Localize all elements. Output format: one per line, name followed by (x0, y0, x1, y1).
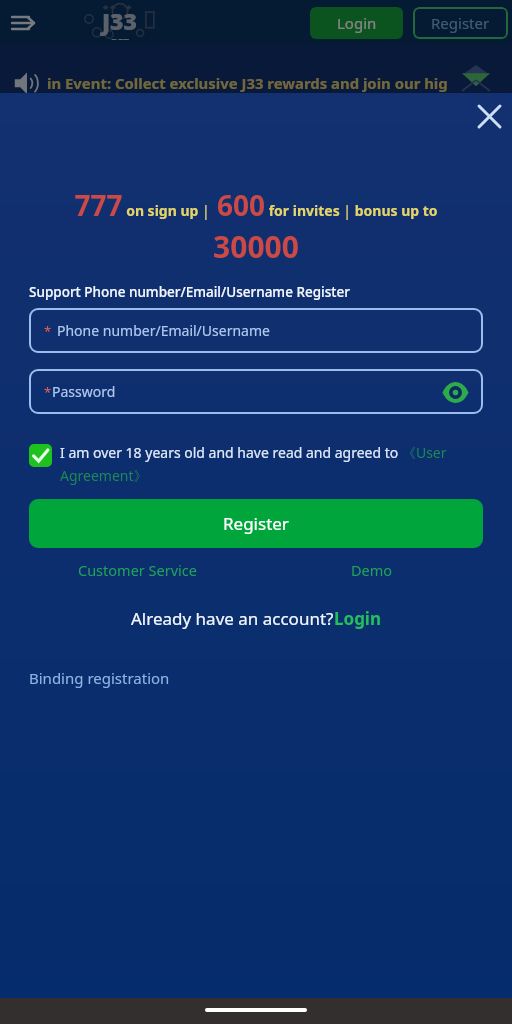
staticText: 777 on sign up | 600 for invites | bonus… (20, 186, 492, 224)
button[interactable]: * (29, 308, 483, 353)
staticText: in Event: Collect exclusive J33 rewards … (47, 73, 448, 93)
button[interactable]: Login (334, 607, 382, 630)
button[interactable]: Show password (440, 377, 470, 407)
staticText: Login (337, 13, 377, 33)
staticText: Support Phone number/Email/Username Regi… (29, 283, 350, 301)
staticText: Register (223, 512, 289, 535)
staticText: 30000 (0, 226, 512, 267)
staticText: Demo (351, 560, 393, 580)
button[interactable]: Close (470, 97, 509, 136)
button[interactable]: Demo (347, 556, 397, 584)
staticText: * (44, 322, 52, 340)
button[interactable]: * (29, 369, 483, 414)
staticText: Already have an account? (131, 607, 334, 630)
staticText: Customer Service (78, 560, 197, 580)
staticText: Register (431, 13, 490, 33)
staticText: * (44, 383, 52, 401)
button[interactable]: Menu (6, 6, 40, 40)
staticText: I am over 18 years old and have read and… (60, 443, 483, 485)
button[interactable]: Register (413, 7, 508, 39)
button[interactable]: Agree to terms (29, 444, 52, 467)
staticText: Password (52, 382, 116, 401)
button[interactable]: Messages (462, 65, 490, 91)
staticText: Phone number/Email/Username (57, 321, 270, 340)
staticText: BET (111, 36, 130, 40)
staticText: Binding registration (29, 668, 170, 688)
button[interactable]: Binding registration (29, 668, 170, 688)
button[interactable]: Login (310, 7, 403, 39)
button[interactable]: Customer Service (74, 556, 201, 584)
staticText: J33 (102, 5, 138, 36)
button[interactable]: Announcements (14, 70, 40, 96)
button[interactable]: Register (29, 499, 483, 548)
staticText: Login (334, 607, 382, 630)
